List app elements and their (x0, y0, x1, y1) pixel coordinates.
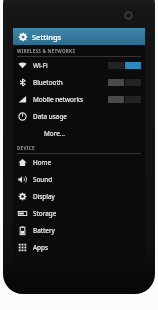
button[interactable]: Storage (13, 205, 145, 222)
staticText: Battery (33, 226, 55, 235)
button[interactable]: Settings (13, 28, 145, 45)
button[interactable]: Apps (13, 239, 145, 256)
staticText: Home (33, 158, 52, 167)
button[interactable]: Display (13, 188, 145, 205)
staticText: Bluetooth (33, 78, 63, 87)
staticText: Mobile networks (33, 95, 84, 104)
staticText: Storage (33, 209, 57, 218)
staticText: Apps (33, 243, 49, 252)
button[interactable]: More... (13, 125, 145, 142)
button[interactable]: Mobile networks (13, 91, 145, 108)
staticText: DEVICE (17, 145, 35, 151)
staticText: More... (44, 129, 65, 138)
button[interactable]: Off (108, 96, 141, 103)
button[interactable]: Wi-Fi (13, 57, 145, 74)
staticText: Data usage (33, 112, 67, 121)
staticText: Display (33, 192, 55, 201)
staticText: Wi-Fi (33, 61, 48, 70)
staticText: Settings (32, 32, 62, 42)
button[interactable]: Bluetooth (13, 74, 145, 91)
staticText: Sound (33, 175, 53, 184)
button[interactable]: Home (13, 154, 145, 171)
button[interactable]: Sound (13, 171, 145, 188)
button[interactable]: On (108, 62, 141, 69)
staticText: WIRELESS & NETWORKS (17, 48, 76, 54)
button[interactable]: Off (108, 79, 141, 86)
button[interactable]: Data usage (13, 108, 145, 125)
button[interactable]: Battery (13, 222, 145, 239)
